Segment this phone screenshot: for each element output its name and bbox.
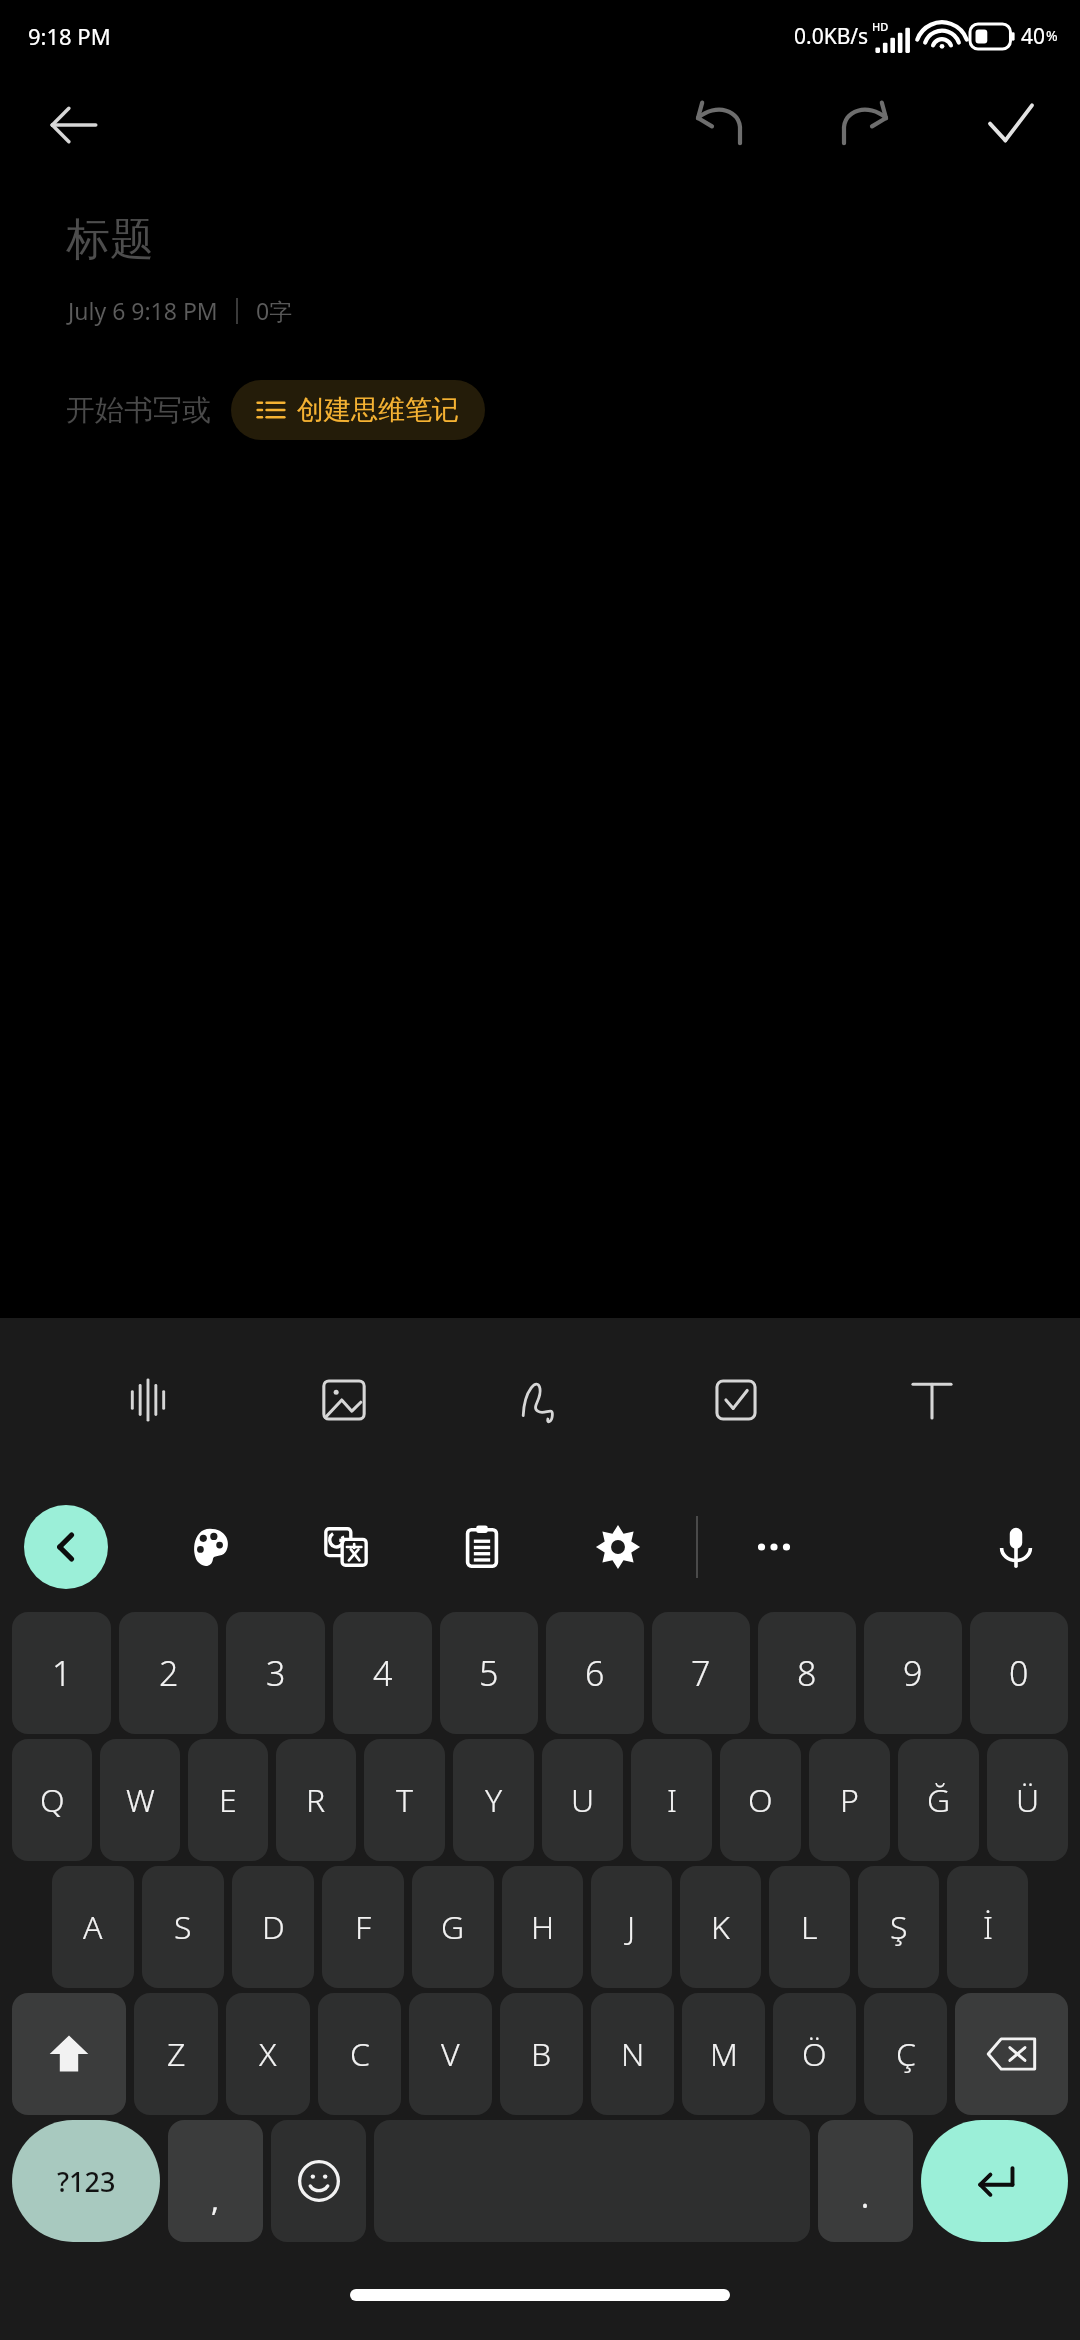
button[interactable]: Emoji — [271, 2120, 366, 2242]
button[interactable]: Q — [12, 1739, 92, 1861]
button[interactable]: . — [818, 2120, 913, 2242]
staticText: Ğ — [927, 1778, 951, 1822]
button[interactable]: 8 — [758, 1612, 856, 1734]
button[interactable]: 1 — [12, 1612, 111, 1734]
button[interactable]: 5 — [440, 1612, 538, 1734]
button[interactable]: L — [769, 1866, 850, 1988]
button[interactable]: R — [276, 1739, 356, 1861]
button[interactable]: U — [542, 1739, 623, 1861]
button[interactable]: 9 — [864, 1612, 962, 1734]
button[interactable]: N — [591, 1993, 674, 2115]
staticText: 8 — [797, 1650, 817, 1696]
button[interactable]: Settings — [578, 1507, 658, 1587]
button[interactable]: G — [412, 1866, 494, 1988]
staticText: O — [748, 1778, 773, 1822]
staticText: 0 — [1009, 1650, 1029, 1696]
button[interactable]: D — [232, 1866, 314, 1988]
button[interactable]: F — [322, 1866, 404, 1988]
button[interactable]: Draw — [492, 1352, 588, 1448]
staticText: Z — [167, 2032, 186, 2076]
staticText: 9:18 PM — [28, 21, 111, 51]
button[interactable]: K — [680, 1866, 761, 1988]
button[interactable]: 4 — [333, 1612, 432, 1734]
staticText: 5 — [479, 1650, 499, 1696]
button[interactable]: Shift — [12, 1993, 126, 2115]
button[interactable]: J — [591, 1866, 672, 1988]
button[interactable]: Backspace — [955, 1993, 1068, 2115]
staticText: I — [667, 1778, 677, 1822]
staticText: M — [710, 2032, 738, 2076]
button[interactable]: S — [142, 1866, 224, 1988]
button[interactable]: P — [809, 1739, 890, 1861]
staticText: 创建思维笔记 — [297, 393, 459, 427]
button[interactable]: I — [631, 1739, 712, 1861]
button[interactable]: Voice input — [976, 1507, 1056, 1587]
button[interactable]: X — [226, 1993, 310, 2115]
button[interactable]: Theme — [170, 1507, 250, 1587]
staticText: % — [1046, 26, 1058, 45]
button[interactable]: , — [168, 2120, 263, 2242]
button[interactable]: Ü — [987, 1739, 1068, 1861]
button[interactable]: Image — [296, 1352, 392, 1448]
staticText: 4 — [373, 1650, 393, 1696]
button[interactable]: Done — [976, 90, 1046, 160]
staticText: 7 — [691, 1650, 711, 1696]
button[interactable]: Ç — [864, 1993, 947, 2115]
button[interactable]: Clipboard — [442, 1507, 522, 1587]
button[interactable]: Translate — [306, 1507, 386, 1587]
button[interactable]: Ğ — [898, 1739, 979, 1861]
button[interactable]: Redo — [830, 90, 900, 160]
button[interactable]: Enter — [921, 2120, 1068, 2242]
staticText: . — [861, 2176, 870, 2217]
button[interactable]: 2 — [119, 1612, 218, 1734]
staticText: Ö — [802, 2032, 827, 2076]
staticText: Ç — [896, 2032, 916, 2076]
button[interactable]: Back — [42, 93, 106, 157]
button[interactable]: M — [682, 1993, 765, 2115]
button[interactable]: W — [100, 1739, 180, 1861]
button[interactable]: E — [188, 1739, 268, 1861]
button[interactable]: Checklist — [688, 1352, 784, 1448]
staticText: Ü — [1016, 1778, 1040, 1822]
button[interactable]: A — [52, 1866, 134, 1988]
staticText: K — [711, 1905, 730, 1949]
button[interactable]: 创建思维笔记 — [231, 380, 485, 440]
button[interactable]: B — [500, 1993, 583, 2115]
button[interactable]: Ö — [773, 1993, 856, 2115]
staticText: , — [211, 2179, 220, 2220]
staticText: H — [531, 1905, 555, 1949]
staticText: B — [531, 2032, 552, 2076]
button[interactable]: ?123 — [12, 2120, 160, 2242]
button[interactable]: 7 — [652, 1612, 750, 1734]
button[interactable]: İ — [947, 1866, 1028, 1988]
button[interactable]: Undo — [684, 90, 754, 160]
staticText: ?123 — [57, 2163, 116, 2200]
staticText: HD — [872, 19, 889, 34]
staticText: G — [441, 1905, 465, 1949]
button[interactable]: 6 — [546, 1612, 644, 1734]
button[interactable]: Z — [134, 1993, 218, 2115]
button[interactable]: V — [409, 1993, 492, 2115]
staticText: 0.0KB/s — [794, 22, 869, 51]
staticText: 3 — [266, 1650, 286, 1696]
button[interactable]: 3 — [226, 1612, 325, 1734]
button[interactable]: Ş — [858, 1866, 939, 1988]
staticText: 6 — [585, 1650, 605, 1696]
button[interactable]: More — [734, 1507, 814, 1587]
button[interactable]: Y — [453, 1739, 534, 1861]
staticText: Y — [485, 1778, 503, 1822]
staticText: E — [219, 1778, 237, 1822]
staticText: W — [126, 1778, 155, 1822]
staticText: U — [571, 1778, 595, 1822]
button[interactable]: O — [720, 1739, 801, 1861]
button[interactable]: T — [364, 1739, 445, 1861]
button[interactable]: Close keyboard toolbar — [24, 1505, 108, 1589]
button[interactable]: C — [318, 1993, 401, 2115]
button[interactable]: 0 — [970, 1612, 1068, 1734]
button[interactable]: Text style — [884, 1352, 980, 1448]
staticText: P — [840, 1778, 859, 1822]
button[interactable]: Audio — [100, 1352, 196, 1448]
button[interactable]: H — [502, 1866, 583, 1988]
staticText: 开始书写或 — [66, 392, 211, 429]
